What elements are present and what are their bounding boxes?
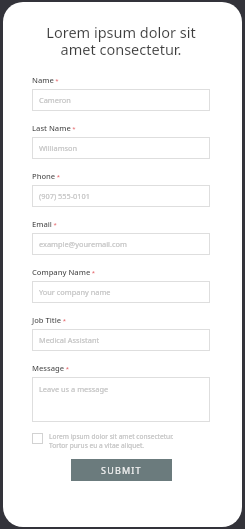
staticText: (907) 555-0101 [39, 191, 91, 201]
staticText: Medical Assistant [39, 335, 100, 345]
staticText: Last Name * [32, 123, 76, 133]
button[interactable]: Your company name [32, 281, 210, 303]
staticText: Name * [32, 75, 59, 85]
staticText: Williamson [39, 143, 78, 153]
staticText: Cameron [39, 95, 71, 105]
button[interactable]: Cameron [32, 89, 210, 111]
button[interactable]: Medical Assistant [32, 329, 210, 351]
button[interactable]: (907) 555-0101 [32, 185, 210, 207]
staticText: Message * [32, 363, 69, 373]
button[interactable]: example@youremail.com [32, 233, 210, 255]
staticText: Lorem ipsum dolor sit amet consectetur. [32, 22, 210, 59]
staticText: Leave us a message [39, 384, 109, 394]
staticText: Lorem ipsum dolor sit amet consectetur. … [49, 432, 174, 450]
button[interactable]: SUBMIT [71, 459, 172, 481]
staticText: SUBMIT [101, 464, 142, 476]
staticText: Company Name * [32, 267, 96, 277]
other: Accept terms checkbox [32, 433, 43, 444]
staticText: Your company name [39, 287, 111, 297]
button[interactable]: Williamson [32, 137, 210, 159]
button[interactable]: Accept terms checkbox [32, 432, 210, 450]
staticText: example@youremail.com [39, 239, 127, 249]
staticText: Phone * [32, 171, 61, 181]
staticText: Email * [32, 219, 57, 229]
staticText: Job Title * [32, 315, 67, 325]
button[interactable]: Leave us a message [32, 377, 210, 422]
